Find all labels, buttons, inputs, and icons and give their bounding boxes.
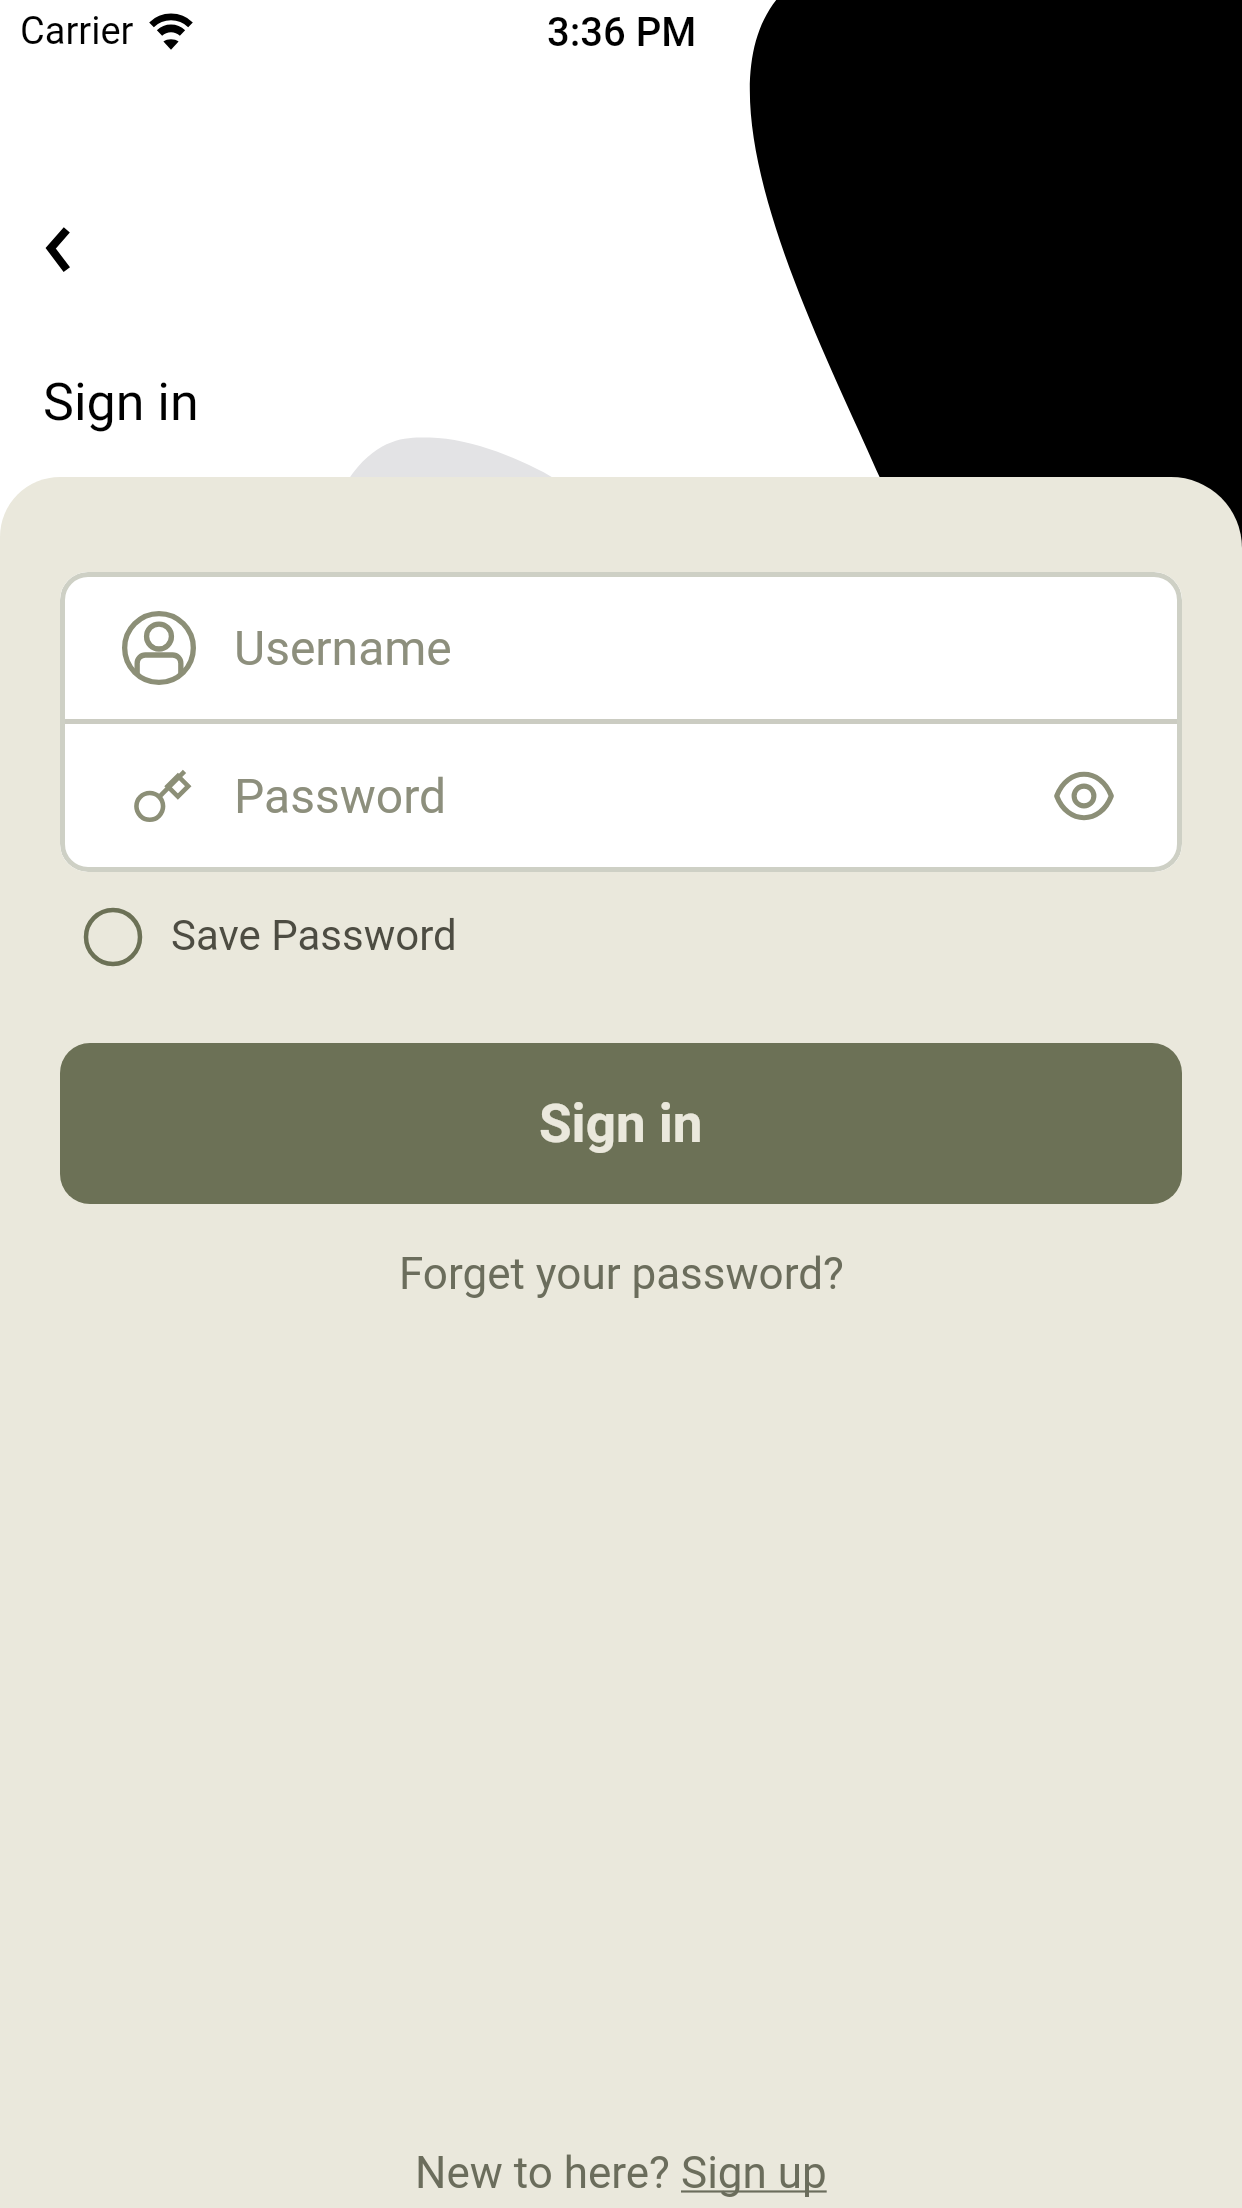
button[interactable]: Forget your password?: [399, 1248, 844, 1300]
button[interactable]: Back: [20, 203, 114, 297]
staticText: Sign in: [539, 1093, 703, 1155]
staticText: 3:36 PM: [547, 9, 697, 56]
staticText: Username: [234, 620, 452, 676]
staticText: Carrier: [20, 9, 134, 54]
button[interactable]: Show password: [1029, 741, 1139, 851]
staticText: Sign in: [43, 372, 199, 433]
button[interactable]: Save Password: [79, 903, 457, 967]
staticText: New to here?: [415, 2147, 681, 2199]
button[interactable]: Sign up: [681, 2147, 827, 2199]
button[interactable]: Password: [60, 727, 1182, 865]
button[interactable]: Sign in: [60, 1043, 1182, 1204]
staticText: Password: [234, 768, 447, 824]
staticText: Save Password: [171, 911, 457, 960]
button[interactable]: Username: [60, 572, 1182, 723]
